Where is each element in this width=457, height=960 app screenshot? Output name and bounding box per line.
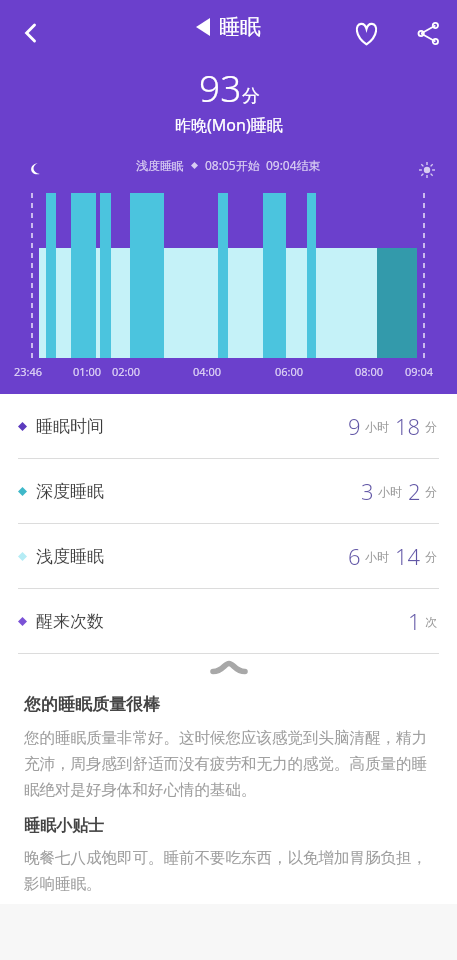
staticText: 9 — [348, 411, 361, 441]
staticText: 23:46 — [14, 364, 43, 379]
staticText: 分 — [425, 419, 437, 434]
staticText: 93 — [199, 62, 242, 112]
staticText: 08:00 — [355, 364, 384, 379]
button[interactable]: 深度睡眠 — [0, 459, 457, 523]
staticText: 小时 — [378, 484, 402, 499]
staticText: 次 — [425, 614, 437, 629]
staticText: 09:04 — [405, 364, 434, 379]
staticText: 晚餐七八成饱即可。睡前不要吃东西，以免增加胃肠负担，影响睡眠。 — [24, 848, 433, 894]
staticText: 昨晚(Mon)睡眠 — [175, 114, 283, 136]
staticText: 1 — [408, 606, 421, 636]
staticText: 睡眠时间 — [36, 416, 104, 437]
staticText: 小时 — [365, 549, 389, 564]
staticText: 18 — [395, 411, 421, 441]
staticText: 浅度睡眠 — [36, 546, 104, 567]
staticText: 分 — [425, 484, 437, 499]
staticText: 睡眠小贴士 — [24, 816, 104, 836]
staticText: 深度睡眠 — [36, 481, 104, 502]
staticText: 6 — [348, 541, 361, 571]
staticText: 2 — [408, 476, 421, 506]
staticText: 08:05开始 09:04结束 — [205, 157, 321, 173]
staticText: 02:00 — [112, 364, 141, 379]
staticText: 分 — [425, 549, 437, 564]
staticText: 浅度睡眠 — [136, 158, 184, 173]
button[interactable]: 睡眠时间 — [0, 394, 457, 458]
staticText: 06:00 — [275, 364, 304, 379]
staticText: 04:00 — [193, 364, 222, 379]
button[interactable]: 浅度睡眠 — [0, 524, 457, 588]
staticText: 分 — [242, 85, 260, 108]
staticText: 3 — [361, 476, 374, 506]
staticText: 小时 — [365, 419, 389, 434]
staticText: 您的睡眠质量很棒 — [24, 694, 160, 715]
button[interactable]: Expand details — [0, 654, 457, 680]
button[interactable]: 睡眠 — [196, 14, 261, 40]
staticText: 您的睡眠质量非常好。这时候您应该感觉到头脑清醒，精力充沛，周身感到舒适而没有疲劳… — [24, 728, 433, 800]
staticText: 14 — [395, 541, 421, 571]
staticText: 01:00 — [73, 364, 102, 379]
button[interactable]: Back — [10, 12, 52, 54]
button[interactable]: Share — [407, 12, 449, 54]
staticText: 醒来次数 — [36, 611, 104, 632]
button[interactable]: Favorite — [345, 12, 387, 54]
button[interactable]: 醒来次数 — [0, 589, 457, 653]
staticText: 睡眠 — [219, 14, 261, 40]
